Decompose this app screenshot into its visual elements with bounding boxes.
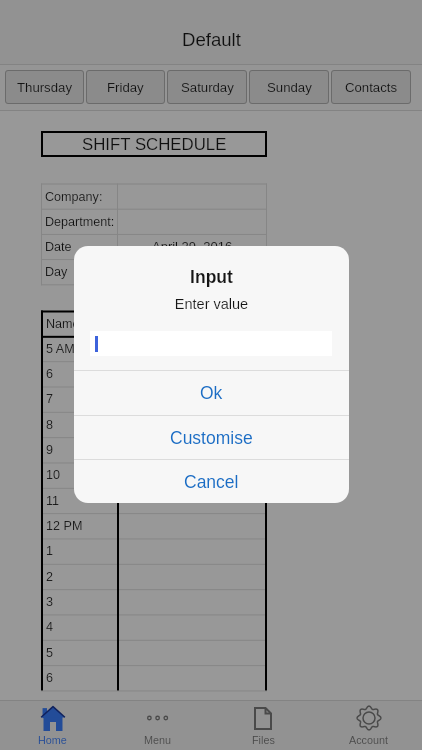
staticText: Thursday <box>17 80 72 95</box>
button[interactable]: Contacts <box>331 70 411 104</box>
staticText: Sunday <box>267 80 312 95</box>
staticText: 5 AM <box>46 342 75 356</box>
staticText: Friday <box>107 80 144 95</box>
staticText: April 29, 2016 <box>152 239 233 254</box>
staticText: Home <box>38 734 67 746</box>
staticText: Default <box>182 29 241 50</box>
staticText: 11 <box>46 494 60 508</box>
other: Files <box>254 707 272 730</box>
staticText: Enter value <box>74 296 349 312</box>
button[interactable]: Home <box>0 701 105 750</box>
other: Account <box>357 706 381 730</box>
staticText: 1 <box>46 544 54 558</box>
button[interactable]: Ok <box>74 371 349 415</box>
staticText: Cancel <box>184 472 239 492</box>
staticText: 10 <box>46 468 61 482</box>
staticText: 4 <box>46 620 54 634</box>
staticText: Input <box>74 267 349 287</box>
other: Home <box>41 706 65 731</box>
staticText: 3 <box>46 595 54 609</box>
staticText: Name <box>46 317 80 331</box>
staticText: Menu <box>144 734 172 746</box>
button[interactable]: Menu <box>105 701 210 750</box>
staticText: Company: <box>45 190 103 204</box>
staticText: 5 <box>46 646 54 660</box>
staticText: 6 <box>46 367 54 381</box>
staticText: 12 PM <box>46 519 83 533</box>
staticText: Contacts <box>345 80 398 95</box>
staticText: 2 <box>46 570 54 584</box>
staticText: 9 <box>46 443 54 457</box>
button[interactable]: Customise <box>74 416 349 459</box>
staticText: Ok <box>200 383 223 403</box>
staticText: 7 <box>46 392 54 406</box>
staticText: Day <box>45 265 68 279</box>
button[interactable]: Thursday <box>5 70 84 104</box>
staticText: Files <box>252 734 275 746</box>
button[interactable]: Sunday <box>249 70 329 104</box>
button[interactable]: Saturday <box>167 70 247 104</box>
button[interactable]: Account <box>316 701 422 750</box>
staticText: Account <box>349 734 389 746</box>
staticText: 6 <box>46 671 54 685</box>
staticText: Department: <box>45 215 115 229</box>
staticText: Customise <box>170 428 253 448</box>
staticText: Saturday <box>181 80 234 95</box>
button[interactable]: Cancel <box>74 460 349 503</box>
staticText: SHIFT SCHEDULE <box>82 135 227 154</box>
button[interactable]: Friday <box>86 70 165 104</box>
staticText: 8 <box>46 418 54 432</box>
button[interactable]: Files <box>210 701 316 750</box>
button[interactable] <box>90 331 332 356</box>
staticText: Date <box>45 240 72 254</box>
other: Menu <box>147 713 168 723</box>
